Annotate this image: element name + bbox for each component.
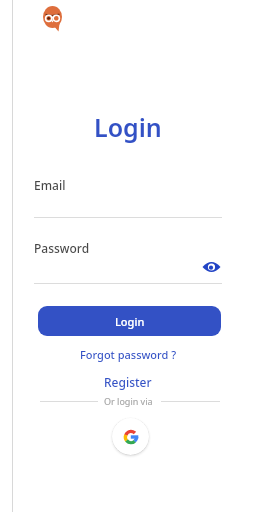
- button[interactable]: [112, 418, 149, 455]
- button[interactable]: Register: [98, 372, 158, 392]
- button[interactable]: Forgot password ?: [74, 345, 183, 364]
- staticText: Or login via: [104, 395, 153, 407]
- staticText: Login: [94, 110, 162, 144]
- staticText: Login: [115, 314, 145, 329]
- staticText: Register: [104, 374, 152, 390]
- button[interactable]: Login: [38, 306, 221, 336]
- staticText: Email: [34, 177, 66, 193]
- staticText: Forgot password ?: [80, 347, 177, 362]
- staticText: Password: [34, 240, 90, 256]
- button[interactable]: [200, 257, 222, 277]
